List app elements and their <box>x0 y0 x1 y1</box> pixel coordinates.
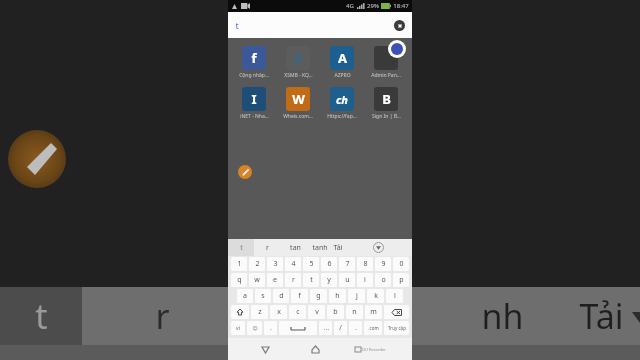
staticText: x <box>277 307 281 317</box>
button[interactable]: 4 <box>285 257 301 271</box>
staticText: v <box>315 307 319 317</box>
staticText: i <box>364 275 366 285</box>
staticText: e <box>273 275 277 285</box>
button[interactable]: e <box>267 273 283 287</box>
button[interactable]: tan <box>281 239 309 256</box>
button[interactable]: t <box>228 12 412 38</box>
staticText: 8 <box>363 259 368 269</box>
button[interactable]: Clear <box>394 20 405 31</box>
button[interactable]: ☺ <box>247 321 262 335</box>
staticText: b <box>333 307 338 317</box>
button[interactable]: Tải <box>331 239 344 256</box>
button[interactable]: t <box>228 239 254 256</box>
button[interactable]: , <box>264 321 277 335</box>
button[interactable]: m <box>365 305 382 319</box>
button[interactable]: 9 <box>375 257 391 271</box>
button[interactable]: l <box>386 289 403 303</box>
staticText: XSMB - KQ... <box>284 72 313 79</box>
staticText: / <box>339 323 342 333</box>
button[interactable]: c <box>289 305 306 319</box>
staticText: 1 <box>237 259 242 269</box>
staticText: 3 <box>273 259 278 269</box>
button[interactable]: o <box>375 273 391 287</box>
button[interactable]: Back <box>252 338 278 360</box>
button[interactable]: Recents <box>352 338 388 360</box>
button[interactable]: p <box>393 273 409 287</box>
button[interactable]: 5 <box>303 257 319 271</box>
button[interactable]: f <box>232 44 276 81</box>
staticText: t <box>240 243 243 253</box>
staticText: m <box>370 307 377 317</box>
staticText: r <box>292 275 295 285</box>
staticText: 4 <box>291 259 296 269</box>
button[interactable]: d <box>273 289 289 303</box>
staticText: d <box>279 291 284 301</box>
button[interactable]: W <box>276 85 320 122</box>
button[interactable]: a <box>237 289 253 303</box>
button[interactable]: s <box>255 289 271 303</box>
button[interactable]: A <box>320 44 364 81</box>
button[interactable]: 0 <box>393 257 409 271</box>
button[interactable]: g <box>310 289 327 303</box>
button[interactable]: i <box>357 273 373 287</box>
staticText: 5 <box>309 259 314 269</box>
staticText: B <box>382 90 391 108</box>
button[interactable]: 7 <box>339 257 355 271</box>
button[interactable]: ch <box>320 85 364 122</box>
button[interactable]: z <box>251 305 268 319</box>
button[interactable]: 6 <box>321 257 337 271</box>
button[interactable]: .com <box>364 321 382 335</box>
button[interactable]: v <box>308 305 325 319</box>
button[interactable]: 1 <box>231 257 247 271</box>
staticText: .com <box>368 325 379 331</box>
staticText: 4G <box>346 2 354 10</box>
button[interactable]: More suggestions <box>344 239 412 256</box>
button[interactable]: Key <box>384 305 409 319</box>
button[interactable]: Admin Pan... <box>364 44 408 81</box>
staticText: w <box>254 275 260 285</box>
staticText: 9 <box>381 259 386 269</box>
button[interactable]: w <box>249 273 265 287</box>
button[interactable]: f <box>291 289 308 303</box>
button[interactable]: . <box>349 321 362 335</box>
button[interactable]: h <box>329 289 346 303</box>
staticText: h <box>335 291 340 301</box>
button[interactable]: n <box>346 305 363 319</box>
button[interactable]: I <box>232 85 276 122</box>
button[interactable]: 8 <box>357 257 373 271</box>
button[interactable]: B <box>364 85 408 122</box>
staticText: k <box>374 291 378 301</box>
button[interactable]: Key <box>231 305 249 319</box>
button[interactable]: 2 <box>249 257 265 271</box>
button[interactable]: tanh <box>309 239 331 256</box>
button[interactable]: t <box>303 273 319 287</box>
button[interactable]: Home <box>302 338 328 360</box>
button[interactable]: vi <box>231 321 245 335</box>
staticText: g <box>316 291 321 301</box>
staticText: Sign In | B... <box>372 113 401 120</box>
staticText: j <box>356 291 358 301</box>
button[interactable]: k <box>367 289 384 303</box>
button[interactable]: Truy cập <box>384 321 409 335</box>
button[interactable]: / <box>334 321 347 335</box>
button[interactable]: u <box>339 273 355 287</box>
staticText: t <box>235 19 239 31</box>
staticText: ⋯ <box>323 325 329 332</box>
button[interactable]: b <box>327 305 344 319</box>
staticText: t <box>35 293 48 339</box>
button[interactable]: Brush <box>238 165 252 179</box>
staticText: A <box>338 49 347 67</box>
button[interactable]: j <box>348 289 365 303</box>
button[interactable]: q <box>231 273 247 287</box>
button[interactable]: r <box>254 239 281 256</box>
button[interactable]: x <box>270 305 287 319</box>
button[interactable]: 3 <box>267 257 283 271</box>
staticText: tan <box>316 293 369 339</box>
button[interactable]: r <box>285 273 301 287</box>
button[interactable]: y <box>321 273 337 287</box>
staticText: . <box>355 323 357 333</box>
button[interactable]: ⋯ <box>319 321 332 335</box>
button[interactable]: Key <box>279 321 317 335</box>
button[interactable]: X <box>276 44 320 81</box>
staticText: 29% <box>367 2 379 10</box>
